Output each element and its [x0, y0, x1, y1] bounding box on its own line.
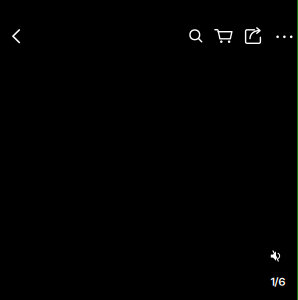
button[interactable]: More options [270, 14, 298, 58]
button[interactable]: Back [0, 14, 36, 58]
button[interactable]: Unmute [267, 247, 287, 265]
staticText: 1/6 [270, 275, 285, 288]
button[interactable]: Share [239, 14, 267, 58]
button[interactable]: Shopping cart [210, 14, 238, 58]
button[interactable]: Search [182, 14, 210, 58]
